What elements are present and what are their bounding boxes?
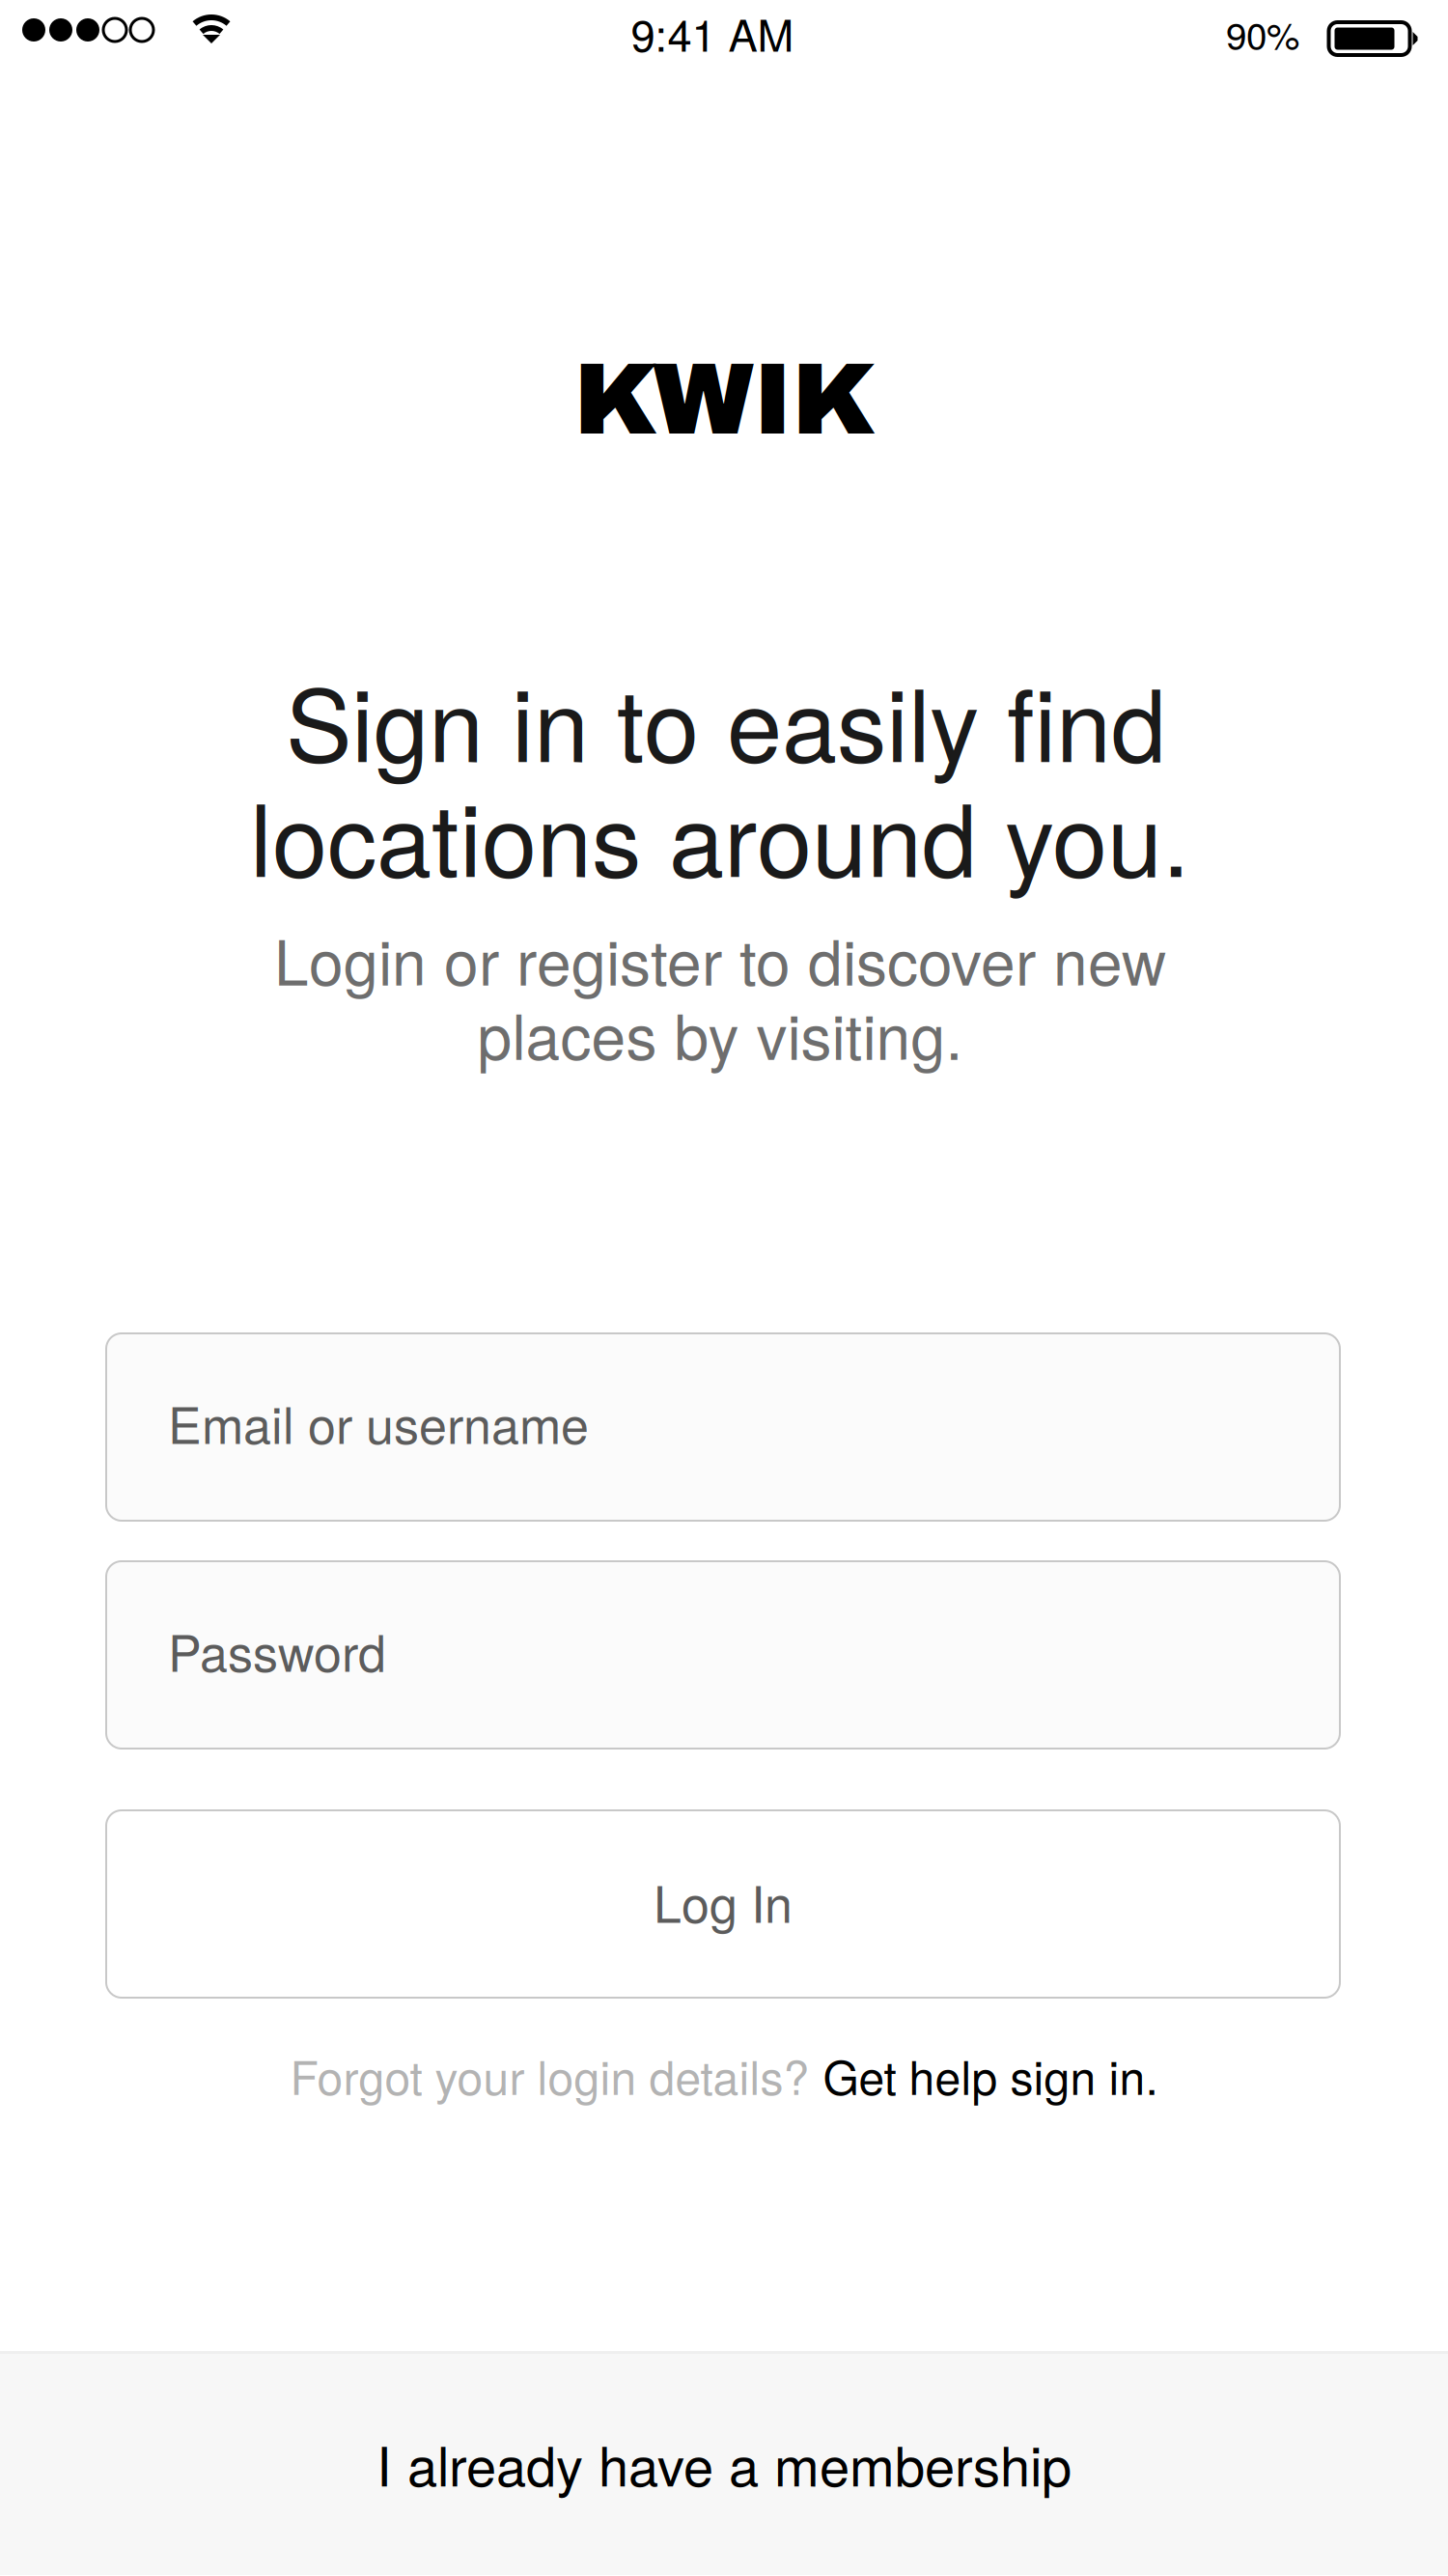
staticText: Email or username	[168, 1386, 589, 1458]
staticText: Get help sign in.	[823, 2042, 1158, 2108]
staticText: Login or register to discover new	[274, 915, 1166, 1003]
button[interactable]: I already have a membership	[0, 2351, 1448, 2575]
staticText: KWIK	[573, 344, 877, 455]
staticText: locations around you.	[250, 763, 1190, 905]
staticText: 9:41 AM	[631, 1, 794, 64]
staticText: Sign in to easily find	[286, 648, 1166, 790]
staticText: Log In	[654, 1865, 793, 1937]
staticText: Password	[168, 1614, 386, 1686]
button[interactable]: Forgot your login details?	[290, 2042, 1158, 2108]
button[interactable]: Email or username	[106, 1333, 1340, 1521]
staticText: 90%	[1226, 7, 1299, 61]
button[interactable]: Log In	[106, 1810, 1340, 1998]
button[interactable]: Password	[106, 1561, 1340, 1749]
staticText: Forgot your login details?	[290, 2042, 809, 2108]
staticText: I already have a membership	[376, 2424, 1072, 2502]
staticText: places by visiting.	[477, 989, 963, 1077]
